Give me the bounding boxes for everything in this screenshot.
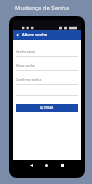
staticText: Senha atual (16, 49, 35, 54)
staticText: Confirme senha (16, 77, 42, 82)
button[interactable]: Back (13, 30, 22, 40)
button[interactable]: ALTERAR (16, 104, 78, 112)
staticText: Mudança de Senha (15, 4, 69, 12)
staticText: Altere senha (22, 32, 48, 38)
staticText: Nova senha (16, 63, 35, 68)
button[interactable]: Recents (58, 161, 66, 169)
button[interactable]: Back (27, 161, 35, 169)
staticText: ALTERAR (40, 106, 54, 110)
button[interactable]: Home (42, 161, 50, 169)
